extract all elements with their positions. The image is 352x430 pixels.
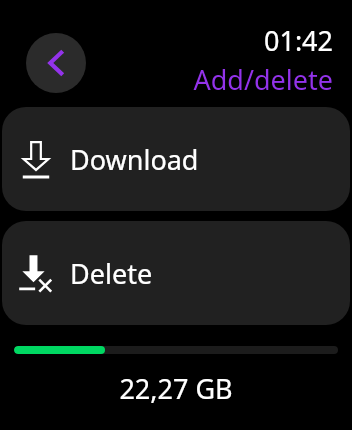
staticText: Delete bbox=[70, 255, 153, 292]
staticText: 22,27 GB bbox=[0, 370, 352, 407]
staticText: 01:42 bbox=[263, 22, 333, 59]
button[interactable]: Delete bbox=[2, 221, 350, 325]
staticText: Add/delete bbox=[193, 61, 333, 98]
button[interactable]: Back bbox=[26, 33, 86, 93]
staticText: Download bbox=[70, 141, 199, 178]
button[interactable]: Download bbox=[2, 107, 350, 211]
